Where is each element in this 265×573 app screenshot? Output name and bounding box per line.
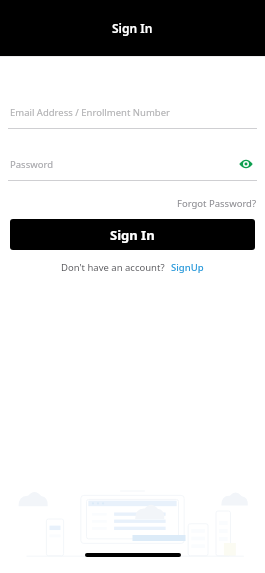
staticText: Sign In [112, 20, 153, 36]
staticText: Password [10, 158, 53, 171]
staticText: Email Address / Enrollment Number [10, 106, 170, 119]
button[interactable]: SignUp [170, 259, 205, 276]
button[interactable]: Sign In [10, 219, 255, 250]
button[interactable]: Forgot Password? [169, 195, 265, 212]
staticText: Don't have an account? [61, 261, 165, 274]
staticText: SignUp [171, 261, 204, 274]
button[interactable]: Email Address / Enrollment Number [0, 102, 265, 122]
staticText: Sign In [110, 226, 155, 244]
staticText: Forgot Password? [177, 197, 257, 210]
button[interactable]: Show password [235, 153, 257, 175]
button[interactable]: Password [10, 153, 235, 175]
